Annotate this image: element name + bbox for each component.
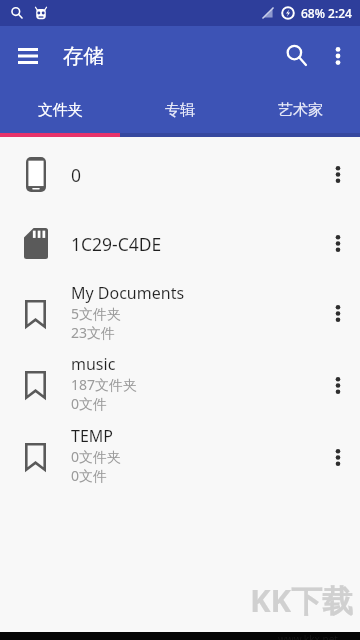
staticText: 文件夹 <box>38 101 83 120</box>
button[interactable]: 0 <box>0 140 360 209</box>
button[interactable]: More options <box>316 278 360 349</box>
staticText: 0文件夹 <box>71 447 122 466</box>
staticText: KK下载 <box>250 579 354 621</box>
button[interactable]: 1C29-C4DE <box>0 209 360 278</box>
staticText: My Documents <box>71 282 185 304</box>
staticText: 专辑 <box>165 101 195 120</box>
button[interactable]: Navigation menu <box>0 28 56 84</box>
button[interactable]: 专辑 <box>120 85 240 133</box>
button[interactable]: My Documents <box>0 278 360 349</box>
button[interactable]: More options <box>316 209 360 278</box>
button[interactable]: 艺术家 <box>240 85 360 133</box>
staticText: 0文件 <box>71 394 108 413</box>
staticText: 187文件夹 <box>71 375 138 394</box>
button[interactable]: Search <box>269 32 316 79</box>
staticText: www.kkx.net <box>278 632 338 640</box>
staticText: TEMP <box>71 425 113 447</box>
staticText: 68% 2:24 <box>301 5 352 21</box>
button[interactable]: 文件夹 <box>0 85 120 133</box>
staticText: 0 <box>71 163 82 187</box>
button[interactable]: More options <box>316 140 360 209</box>
staticText: 1C29-C4DE <box>71 232 162 256</box>
staticText: 23文件 <box>71 323 116 342</box>
staticText: music <box>71 353 116 375</box>
button[interactable]: More options <box>316 349 360 421</box>
staticText: 存储 <box>63 43 104 69</box>
button[interactable]: More options <box>316 34 360 78</box>
button[interactable]: music <box>0 349 360 421</box>
staticText: 5文件夹 <box>71 304 122 323</box>
staticText: 0文件 <box>71 466 108 485</box>
button[interactable]: More options <box>316 421 360 493</box>
button[interactable]: TEMP <box>0 421 360 493</box>
staticText: 艺术家 <box>278 101 323 120</box>
